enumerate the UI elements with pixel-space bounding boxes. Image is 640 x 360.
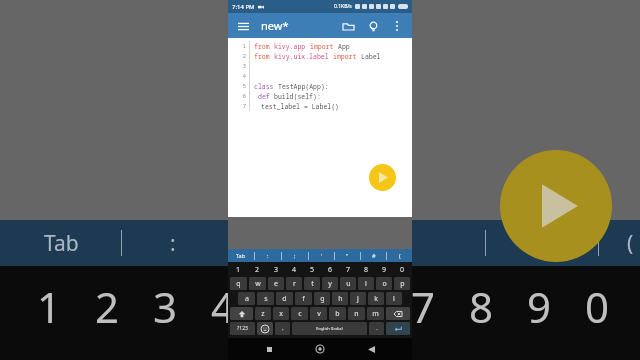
staticText: Label xyxy=(361,52,381,61)
button[interactable]: Home xyxy=(310,339,330,359)
staticText: Tab xyxy=(236,252,246,259)
button[interactable]: Backspace xyxy=(386,307,410,320)
button[interactable]: y xyxy=(322,277,338,290)
staticText: n xyxy=(354,309,359,319)
button[interactable]: u xyxy=(340,277,356,290)
staticText: 7 xyxy=(394,278,452,335)
button[interactable]: ' xyxy=(309,249,334,262)
staticText: 2 xyxy=(228,52,246,60)
staticText: test_label = Label() xyxy=(261,102,340,111)
button[interactable]: i xyxy=(358,277,374,290)
staticText: o xyxy=(382,279,387,289)
button[interactable]: 6 xyxy=(321,264,339,276)
button[interactable]: 7 xyxy=(339,264,357,276)
button[interactable]: a xyxy=(238,292,255,305)
staticText: 6 xyxy=(328,265,333,275)
button[interactable]: q xyxy=(230,277,247,290)
button[interactable]: Shift xyxy=(230,307,253,320)
button[interactable]: n xyxy=(348,307,365,320)
button[interactable]: m xyxy=(367,307,384,320)
button[interactable]: p xyxy=(394,277,410,290)
staticText: ' xyxy=(321,252,323,259)
button[interactable]: Open file xyxy=(339,17,357,35)
button[interactable]: t xyxy=(304,277,320,290)
button[interactable]: Menu xyxy=(235,18,251,34)
button[interactable]: new* xyxy=(261,18,289,33)
button[interactable]: Run xyxy=(500,150,612,262)
button[interactable]: 8 xyxy=(357,264,375,276)
button[interactable]: z xyxy=(255,307,271,320)
button[interactable]: v xyxy=(310,307,327,320)
staticText: y xyxy=(328,279,332,289)
staticText: x xyxy=(279,309,283,319)
button[interactable]: 3 xyxy=(267,264,285,276)
button[interactable]: 1 xyxy=(229,264,248,276)
staticText: w xyxy=(255,279,261,289)
button[interactable]: Enter xyxy=(386,322,410,335)
button[interactable]: # xyxy=(361,249,386,262)
button[interactable]: Tab xyxy=(228,249,254,262)
staticText: 7:14 PM xyxy=(232,3,255,11)
button[interactable]: e xyxy=(268,277,284,290)
button[interactable]: ( xyxy=(387,249,412,262)
staticText: Tab xyxy=(44,229,79,258)
staticText: 4 xyxy=(292,265,297,275)
button[interactable]: English (India) xyxy=(292,322,367,335)
button[interactable]: ?123 xyxy=(230,322,255,335)
button[interactable]: 5 xyxy=(303,264,321,276)
button[interactable]: 0 xyxy=(393,264,411,276)
button[interactable]: 4 xyxy=(285,264,303,276)
button[interactable]: More options xyxy=(389,18,405,34)
staticText: d xyxy=(282,294,287,304)
button[interactable]: Hints xyxy=(364,17,382,35)
button[interactable]: Run xyxy=(369,164,396,191)
staticText: t xyxy=(311,279,314,289)
staticText: v xyxy=(317,309,321,319)
button[interactable]: d xyxy=(276,292,293,305)
staticText: 4 xyxy=(194,278,252,335)
button[interactable]: o xyxy=(376,277,392,290)
button[interactable]: l xyxy=(386,292,402,305)
staticText: 8 xyxy=(452,278,510,335)
staticText: 9 xyxy=(510,278,568,335)
staticText: 1 xyxy=(20,278,78,335)
staticText: from xyxy=(254,52,274,61)
staticText: j xyxy=(357,294,359,304)
staticText: App xyxy=(338,42,350,51)
button[interactable]: w xyxy=(249,277,266,290)
button[interactable]: r xyxy=(286,277,302,290)
button[interactable]: k xyxy=(368,292,384,305)
staticText: kivy.uix.label xyxy=(274,52,333,61)
button[interactable]: x xyxy=(273,307,289,320)
button[interactable]: j xyxy=(350,292,366,305)
staticText: 5 xyxy=(228,82,246,90)
button[interactable]: s xyxy=(257,292,274,305)
staticText: 3 xyxy=(274,265,279,275)
staticText: a xyxy=(245,294,249,304)
button[interactable]: h xyxy=(332,292,348,305)
staticText: 6 xyxy=(228,92,246,100)
button[interactable]: c xyxy=(291,307,308,320)
button[interactable]: g xyxy=(314,292,330,305)
button[interactable]: . xyxy=(369,322,384,335)
staticText: 8 xyxy=(364,265,369,275)
button[interactable]: b xyxy=(329,307,346,320)
button[interactable]: 2 xyxy=(248,264,267,276)
staticText: kivy.app xyxy=(274,42,310,51)
button[interactable]: ; xyxy=(282,249,308,262)
staticText: 0 xyxy=(400,265,405,275)
button[interactable]: " xyxy=(335,249,360,262)
staticText: import xyxy=(333,52,361,61)
button[interactable]: , xyxy=(275,322,290,335)
button[interactable]: Back xyxy=(361,339,381,359)
button[interactable]: Emoji xyxy=(257,322,273,335)
button[interactable]: Recents xyxy=(259,339,279,359)
button[interactable]: f xyxy=(295,292,312,305)
button[interactable]: 9 xyxy=(375,264,393,276)
staticText: c xyxy=(298,309,302,319)
staticText: l xyxy=(393,294,395,304)
staticText: " xyxy=(346,252,349,259)
staticText: p xyxy=(400,279,405,289)
button[interactable]: : xyxy=(255,249,281,262)
staticText: TestApp(App): xyxy=(278,82,329,91)
